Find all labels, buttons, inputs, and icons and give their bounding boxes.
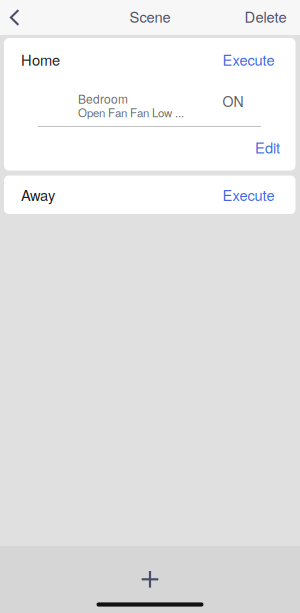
staticText: Home — [21, 49, 60, 70]
staticText: Delete — [244, 6, 286, 27]
staticText: Execute — [222, 184, 274, 205]
button[interactable]: Execute — [222, 175, 295, 214]
staticText: Scene — [129, 6, 170, 27]
staticText: Edit — [255, 137, 280, 158]
button[interactable]: Add scene — [106, 546, 194, 597]
staticText: ON — [222, 91, 243, 111]
staticText: Bedroom — [78, 90, 128, 107]
button[interactable]: Back — [0, 0, 29, 35]
staticText: Execute — [222, 49, 274, 70]
button[interactable]: Edit — [255, 124, 295, 170]
button[interactable]: Execute — [222, 38, 295, 81]
button[interactable]: Delete — [244, 1, 300, 34]
staticText: Away — [21, 184, 55, 205]
staticText: Open Fan Fan Low ... — [78, 104, 184, 120]
